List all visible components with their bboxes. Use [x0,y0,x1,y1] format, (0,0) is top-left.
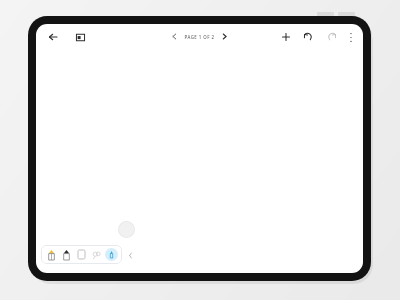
button[interactable]: Undo [301,29,316,44]
button[interactable]: Layers [72,29,88,45]
button[interactable]: More options [344,30,358,44]
staticText: PAGE 1 OF 2 [184,34,215,40]
button[interactable]: Redo [324,29,339,44]
button[interactable]: Color [104,247,119,262]
button[interactable]: Select [89,247,104,262]
button[interactable]: Next page [218,30,231,43]
button[interactable]: Pen [59,247,74,262]
button[interactable]: Add [278,29,293,44]
button[interactable]: Brush size [118,221,135,238]
button[interactable]: Collapse toolbar [125,250,135,260]
button[interactable]: Highlighter [44,247,59,262]
button[interactable]: Previous page [168,30,181,43]
button[interactable]: Eraser [74,247,89,262]
button[interactable]: Back [45,29,61,45]
